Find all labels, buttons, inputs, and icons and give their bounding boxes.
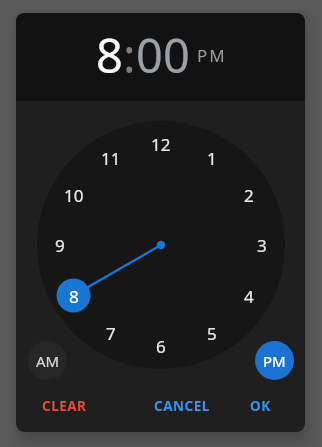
staticText: PM	[197, 44, 227, 67]
staticText: 1	[207, 147, 217, 169]
staticText: CLEAR	[42, 397, 87, 415]
button[interactable]: 12	[145, 133, 177, 155]
staticText: 8	[96, 23, 123, 87]
staticText: 8	[69, 285, 79, 307]
staticText: 7	[106, 322, 116, 344]
staticText: PM	[263, 351, 286, 371]
staticText: 4	[244, 285, 254, 307]
button[interactable]: 11	[95, 147, 127, 169]
staticText: 10	[64, 184, 84, 206]
staticText: OK	[250, 397, 271, 415]
button[interactable]: 10	[58, 184, 90, 206]
button[interactable]: OK	[232, 393, 288, 419]
button[interactable]: 5	[196, 322, 228, 344]
button[interactable]: 3	[246, 234, 278, 256]
staticText: 5	[207, 322, 217, 344]
staticText: 11	[101, 147, 121, 169]
staticText: AM	[36, 351, 60, 371]
staticText: 6	[156, 335, 166, 357]
button[interactable]: CANCEL	[150, 393, 214, 419]
button[interactable]: PM	[255, 341, 294, 380]
button[interactable]: CLEAR	[33, 393, 95, 419]
staticText: 9	[55, 234, 65, 256]
button[interactable]: 8	[96, 23, 123, 87]
button[interactable]: 8	[58, 285, 90, 307]
button[interactable]: 9	[44, 234, 76, 256]
staticText: 12	[151, 133, 171, 155]
staticText: CANCEL	[154, 397, 210, 415]
button[interactable]: 4	[233, 285, 265, 307]
button[interactable]: 1	[196, 147, 228, 169]
button[interactable]: 7	[95, 322, 127, 344]
staticText: 3	[257, 234, 267, 256]
button[interactable]: 6	[145, 335, 177, 357]
staticText: 2	[244, 184, 254, 206]
staticText: 00	[136, 23, 190, 87]
button[interactable]: AM	[28, 341, 67, 380]
button[interactable]: 00	[136, 23, 190, 87]
staticText: :	[123, 23, 136, 87]
button[interactable]: 2	[233, 184, 265, 206]
